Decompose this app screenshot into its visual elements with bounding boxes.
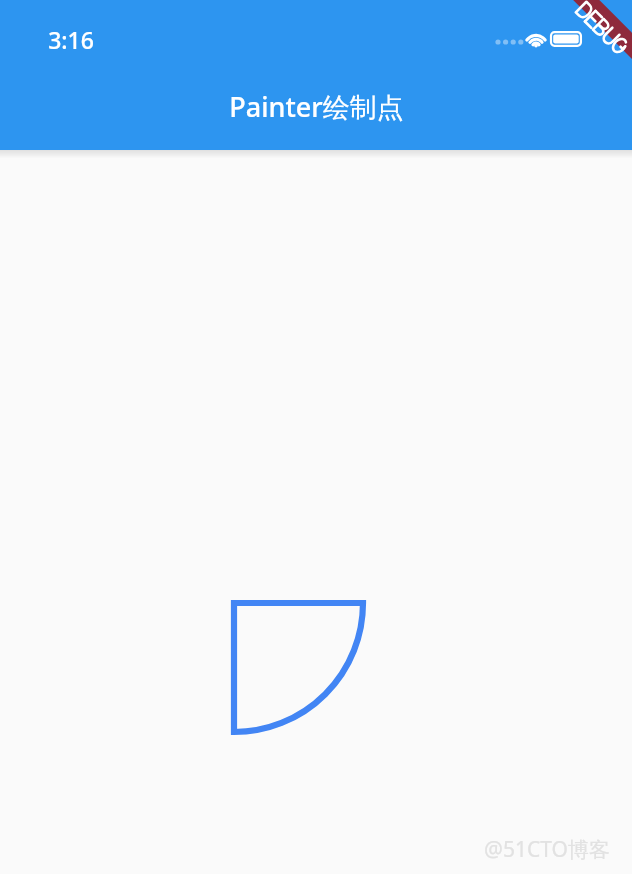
staticText: @51CTO博客 xyxy=(484,835,610,864)
staticText: 3:16 xyxy=(48,24,94,55)
staticText: Painter绘制点 xyxy=(229,88,404,125)
other: Debug banner xyxy=(540,0,632,92)
